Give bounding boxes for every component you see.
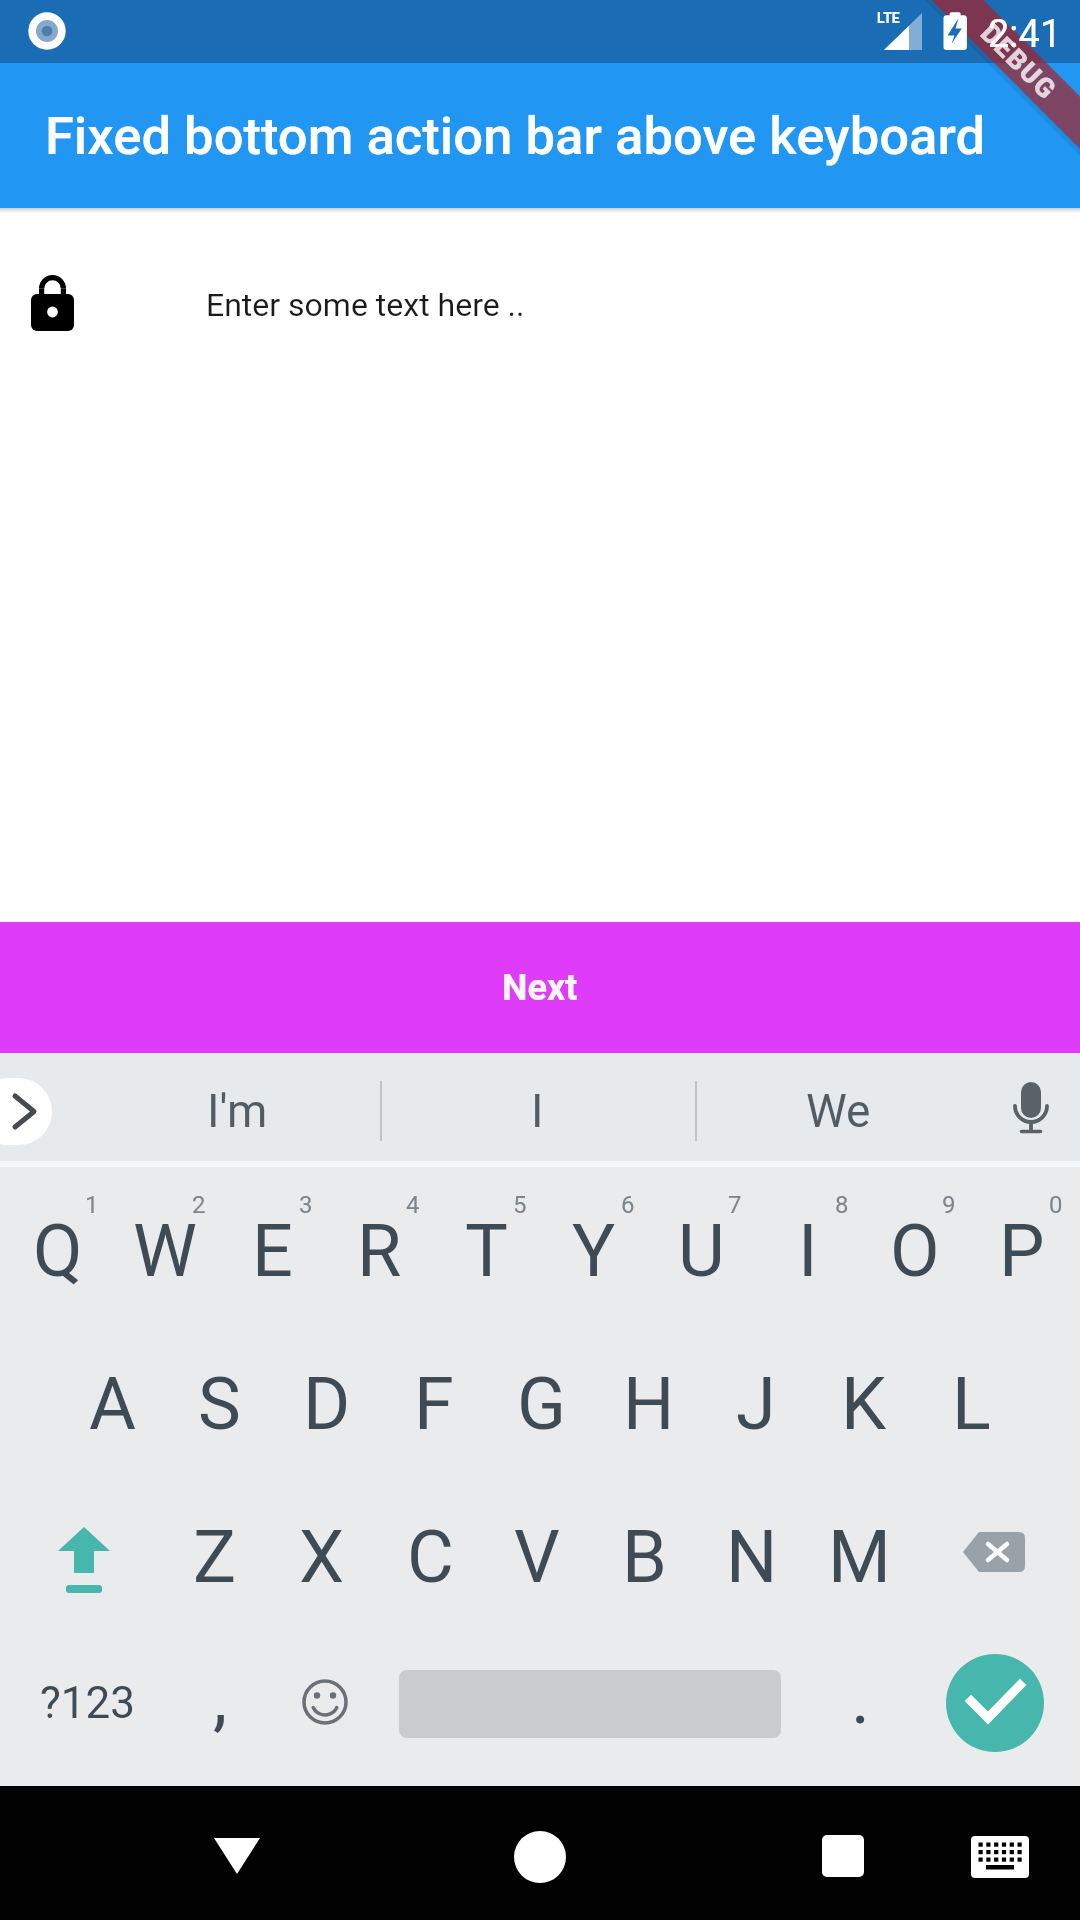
button[interactable]: I	[457, 1082, 617, 1140]
staticText: 4	[406, 1191, 420, 1219]
staticText: O	[890, 1209, 940, 1287]
button[interactable]: R	[326, 1209, 432, 1287]
button[interactable]: G	[489, 1362, 595, 1440]
staticText: 3	[299, 1191, 313, 1219]
button[interactable]: W	[112, 1209, 218, 1287]
button[interactable]: J	[703, 1362, 809, 1440]
button[interactable]: Z	[162, 1515, 268, 1593]
button[interactable]	[971, 1836, 1029, 1878]
staticText: I'm	[207, 1084, 268, 1138]
staticText: 2:41	[988, 12, 1062, 57]
staticText: Enter some text here ..	[206, 286, 525, 324]
staticText: K	[841, 1362, 887, 1440]
staticText: DEBUG	[974, 17, 1063, 106]
button[interactable]	[822, 1835, 864, 1877]
staticText: .	[851, 1656, 870, 1740]
button[interactable]: O	[862, 1209, 968, 1287]
button[interactable]	[301, 1678, 349, 1726]
button[interactable]: A	[59, 1362, 165, 1440]
button[interactable]: T	[433, 1209, 539, 1287]
button[interactable]	[214, 1838, 260, 1874]
button[interactable]	[946, 1654, 1044, 1752]
button[interactable]: Next	[0, 922, 1080, 1053]
staticText: A	[89, 1362, 136, 1440]
button[interactable]: L	[918, 1362, 1024, 1440]
staticText: 7	[728, 1191, 742, 1219]
button[interactable]: I'm	[157, 1082, 317, 1140]
staticText: 6	[621, 1191, 635, 1219]
staticText: V	[514, 1515, 560, 1593]
staticText: ,	[213, 1656, 228, 1740]
button[interactable]: Q	[5, 1209, 111, 1287]
button[interactable]: H	[596, 1362, 702, 1440]
staticText: B	[622, 1515, 667, 1593]
staticText: 2	[192, 1191, 206, 1219]
staticText: P	[999, 1209, 1045, 1287]
button[interactable]: .	[830, 1656, 890, 1740]
staticText: 5	[513, 1191, 527, 1219]
staticText: D	[303, 1362, 351, 1440]
staticText: L	[952, 1362, 991, 1440]
button[interactable]: U	[648, 1209, 754, 1287]
button[interactable]	[514, 1831, 566, 1883]
staticText: X	[299, 1515, 345, 1593]
staticText: 0	[1049, 1191, 1063, 1219]
staticText: T	[465, 1209, 508, 1287]
staticText: Q	[33, 1209, 83, 1287]
staticText: 1	[85, 1191, 99, 1219]
button[interactable]: Y	[541, 1209, 647, 1287]
button[interactable]: We	[758, 1082, 918, 1140]
button[interactable]: I	[755, 1209, 861, 1287]
staticText: J	[736, 1362, 776, 1440]
staticText: F	[414, 1362, 454, 1440]
staticText: I	[798, 1209, 818, 1287]
staticText: 9	[942, 1191, 956, 1219]
staticText: Next	[502, 967, 578, 1009]
staticText: H	[623, 1362, 675, 1440]
button[interactable]	[0, 1078, 52, 1145]
staticText: R	[357, 1209, 402, 1287]
staticText: 8	[835, 1191, 849, 1219]
button[interactable]: E	[219, 1209, 325, 1287]
button[interactable]	[1008, 1080, 1054, 1138]
button[interactable]: P	[969, 1209, 1075, 1287]
button[interactable]: K	[811, 1362, 917, 1440]
button[interactable]	[962, 1531, 1026, 1573]
button[interactable]	[58, 1527, 114, 1597]
button[interactable]: ?123	[30, 1675, 144, 1731]
staticText: LTE	[877, 10, 900, 26]
staticText: U	[678, 1209, 725, 1287]
button[interactable]: B	[591, 1515, 697, 1593]
staticText: Fixed bottom action bar above keyboard	[45, 105, 986, 167]
staticText: S	[198, 1362, 241, 1440]
button[interactable]: N	[699, 1515, 805, 1593]
staticText: G	[517, 1362, 567, 1440]
button[interactable]: M	[806, 1515, 912, 1593]
button[interactable]: V	[484, 1515, 590, 1593]
button[interactable]: F	[381, 1362, 487, 1440]
button[interactable]: ,	[190, 1656, 250, 1740]
button[interactable]: C	[377, 1515, 483, 1593]
staticText: I	[531, 1084, 544, 1138]
staticText: C	[407, 1515, 454, 1593]
staticText: M	[828, 1515, 891, 1593]
staticText: ?123	[40, 1677, 135, 1729]
button[interactable]: S	[166, 1362, 272, 1440]
staticText: We	[806, 1084, 871, 1138]
staticText: Y	[572, 1209, 616, 1287]
staticText: W	[133, 1209, 197, 1287]
staticText: Z	[193, 1515, 237, 1593]
staticText: N	[726, 1515, 778, 1593]
staticText: E	[252, 1209, 293, 1287]
button[interactable]: X	[269, 1515, 375, 1593]
button[interactable]: D	[274, 1362, 380, 1440]
